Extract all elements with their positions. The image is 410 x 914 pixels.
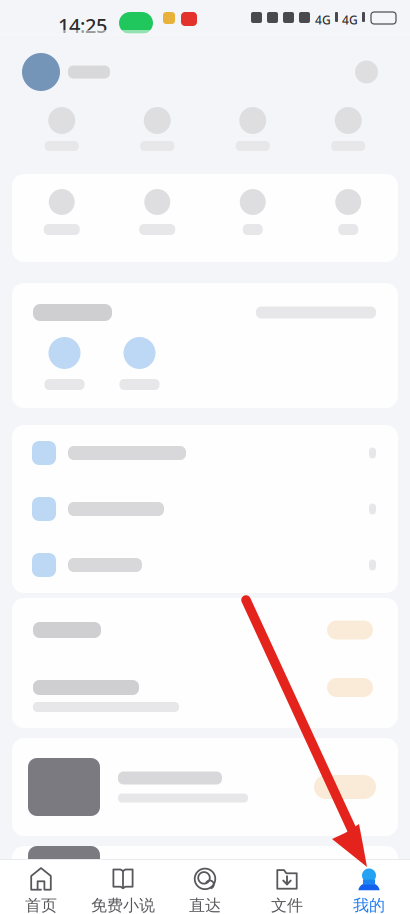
button[interactable]: 快捷入口 (14, 189, 109, 235)
button[interactable]: 会员中心 (12, 662, 398, 728)
button[interactable]: 我的 (328, 860, 410, 914)
staticText: 我的 (353, 896, 385, 914)
button[interactable]: 首页 (0, 860, 82, 914)
button[interactable]: 快捷入口 (109, 107, 205, 151)
staticText: 文件 (271, 896, 303, 914)
button[interactable]: 服务 (27, 337, 102, 390)
staticText: 14:25 (58, 12, 107, 39)
staticText: 直达 (189, 896, 221, 914)
button[interactable]: 文件 (246, 860, 328, 914)
staticText: 首页 (25, 896, 57, 914)
staticText: 4G (315, 12, 331, 28)
button[interactable]: 列表项 (12, 425, 398, 481)
button[interactable]: 快捷入口 (109, 189, 205, 235)
button[interactable]: 免费小说 (82, 860, 164, 914)
staticText: 免费小说 (91, 896, 155, 914)
button[interactable]: 我的权益 (12, 598, 398, 662)
button[interactable]: 快捷入口 (300, 189, 396, 235)
button[interactable]: 列表项 (12, 537, 398, 593)
button[interactable]: 列表项 (12, 481, 398, 537)
button[interactable]: 快捷入口 (205, 107, 300, 151)
button[interactable]: 直达 (164, 860, 246, 914)
button[interactable]: 快捷入口 (14, 107, 109, 151)
button[interactable]: 推荐内容 (0, 728, 410, 836)
button[interactable]: 快捷入口 (205, 189, 300, 235)
staticText: 4G (342, 12, 358, 28)
button[interactable]: 快捷入口 (300, 107, 396, 151)
button[interactable]: 设置 (355, 60, 378, 83)
button[interactable]: 服务 (102, 337, 177, 390)
